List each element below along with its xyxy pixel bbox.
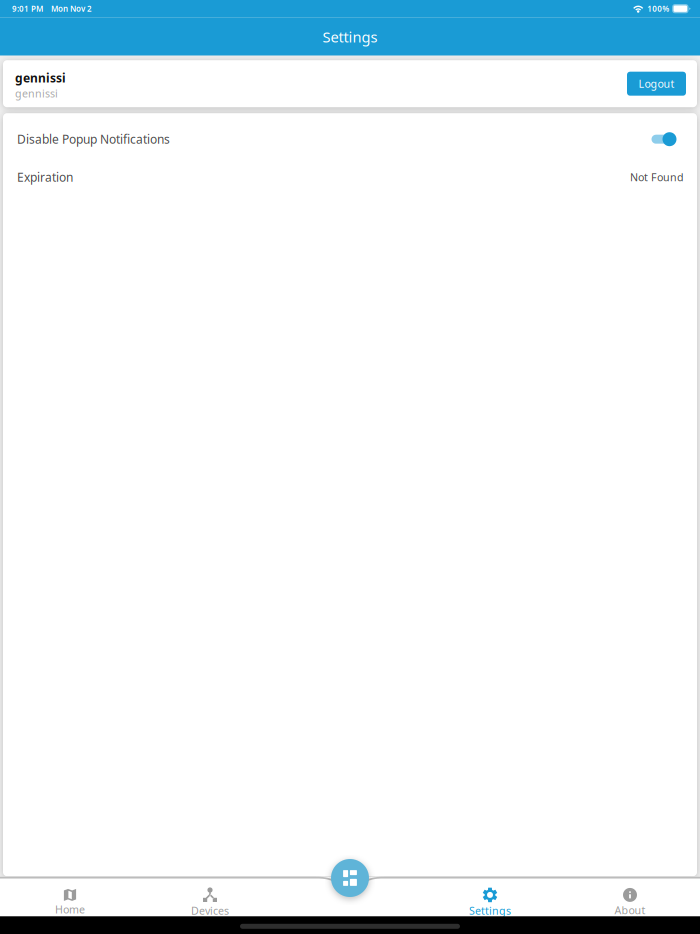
staticText: gennissi: [15, 70, 66, 86]
staticText: Expiration: [17, 169, 73, 185]
button[interactable]: Devices: [140, 883, 280, 921]
button[interactable]: Settings: [420, 883, 560, 921]
button[interactable]: Dashboard: [331, 859, 369, 897]
staticText: 9:01 PM: [12, 3, 43, 14]
staticText: Settings: [322, 27, 377, 46]
staticText: 100%: [647, 3, 669, 14]
button[interactable]: Home: [0, 883, 140, 921]
staticText: Mon Nov 2: [51, 3, 92, 14]
button[interactable]: Expiration: [3, 158, 697, 196]
staticText: Not Found: [630, 170, 684, 184]
button[interactable]: Logout: [627, 72, 686, 96]
staticText: gennissi: [15, 86, 58, 100]
staticText: About: [614, 903, 645, 917]
button[interactable]: About: [560, 883, 700, 921]
staticText: Settings: [469, 903, 511, 918]
button[interactable]: Disable Popup Notifications: [3, 120, 697, 158]
staticText: Devices: [191, 903, 229, 918]
staticText: Disable Popup Notifications: [17, 131, 170, 147]
staticText: Home: [55, 902, 85, 916]
staticText: Logout: [638, 77, 674, 91]
